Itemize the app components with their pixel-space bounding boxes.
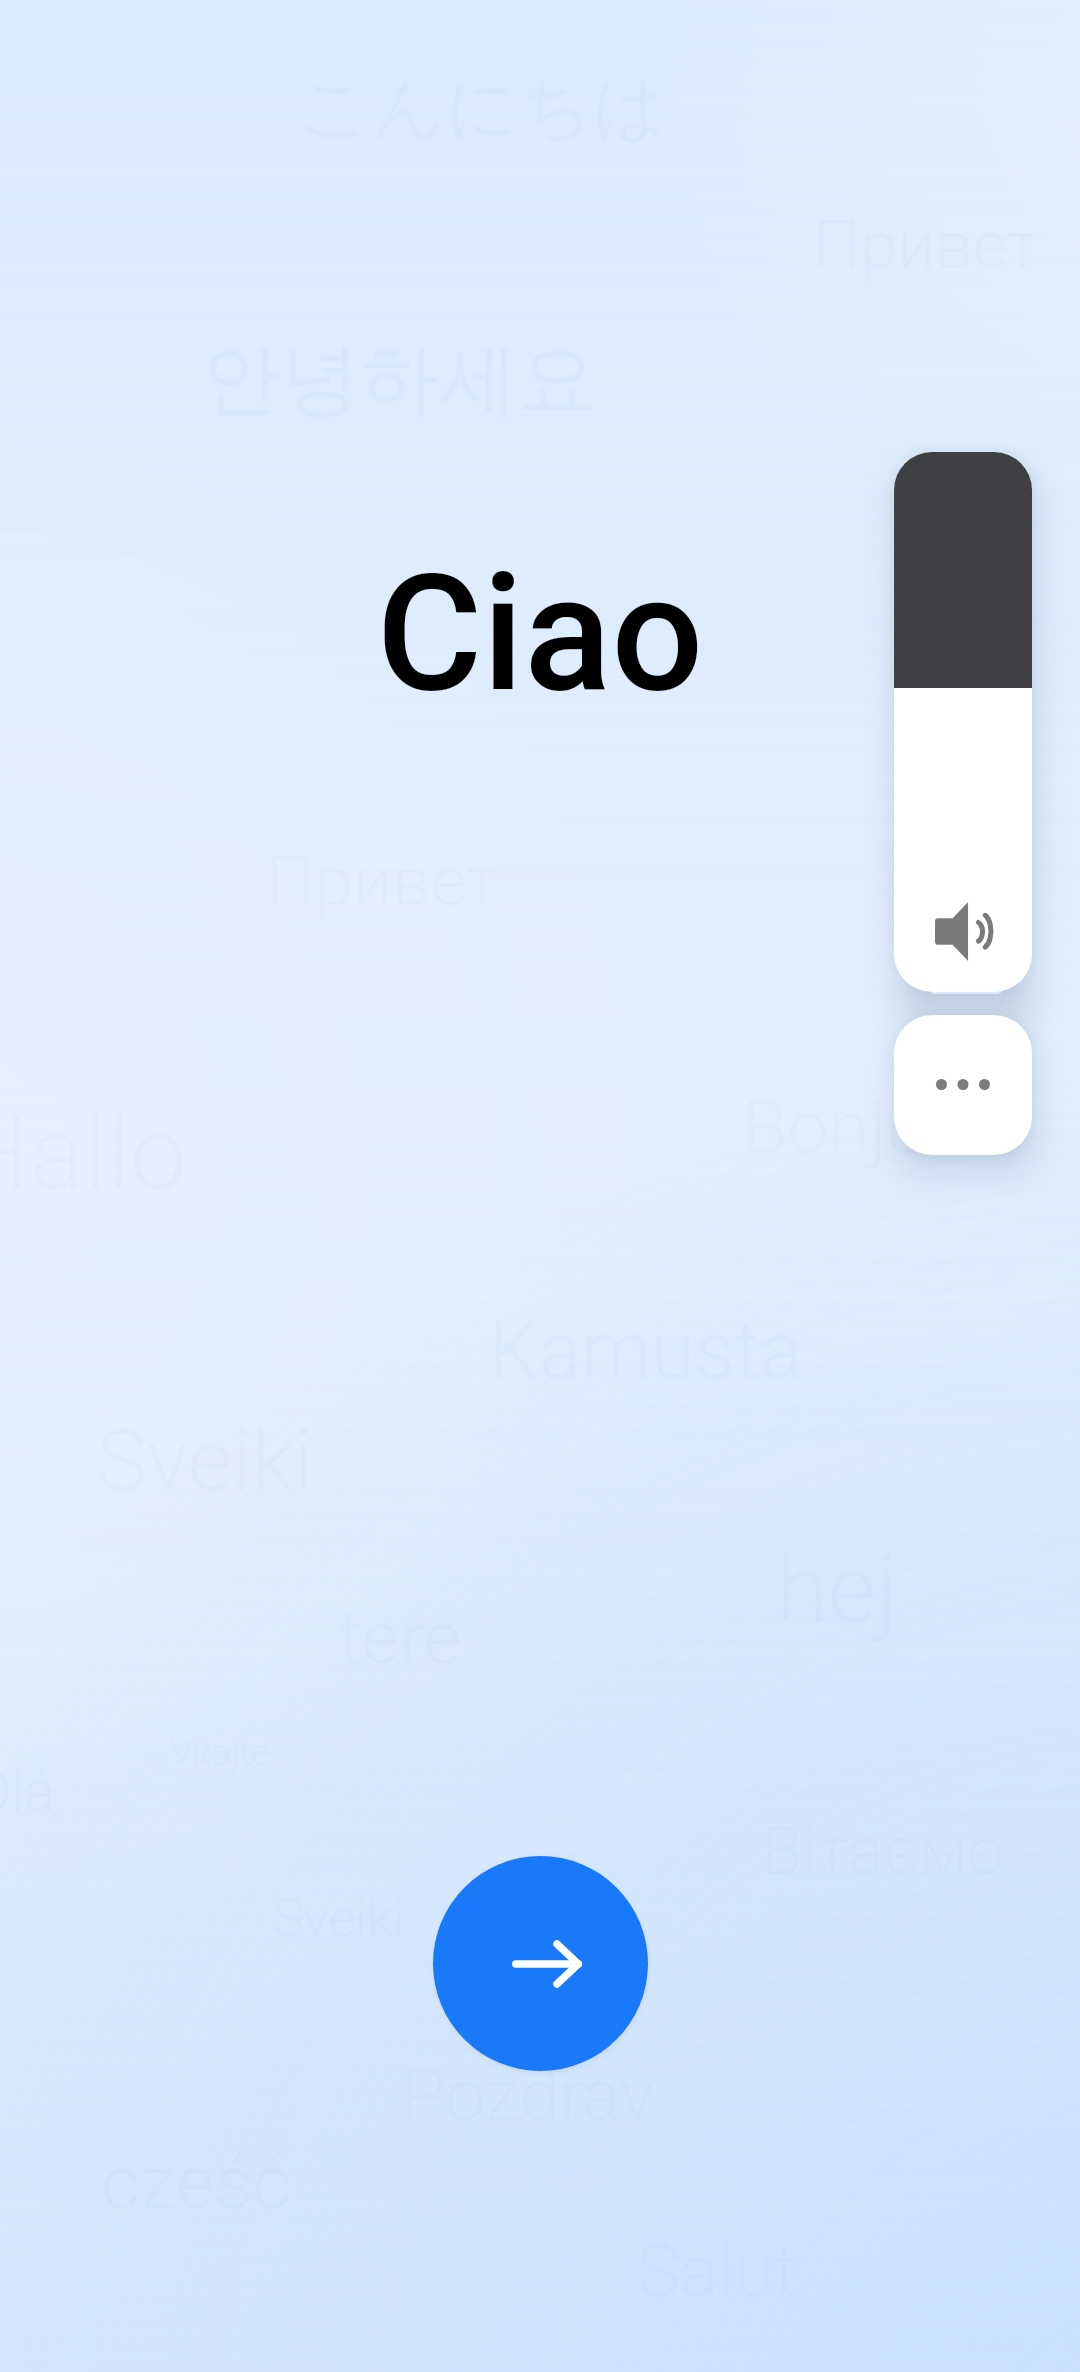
button[interactable]: More options (894, 1015, 1032, 1155)
staticText: Pozdrav (401, 2053, 655, 2137)
staticText: Bonjour (742, 1084, 994, 1171)
staticText: Ciao (0, 539, 1080, 729)
button[interactable]: Next (433, 1856, 648, 2071)
button[interactable]: Volume (894, 452, 1032, 992)
